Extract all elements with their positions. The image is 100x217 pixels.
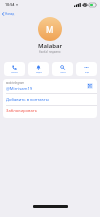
staticText: Назад [5, 12, 15, 16]
button[interactable]: поиск [52, 62, 73, 76]
button[interactable]: Добавить в контакты [3, 94, 97, 105]
staticText: Добавить в контакты [6, 97, 49, 103]
staticText: 10:54 [5, 2, 15, 7]
button[interactable]: Назад [0, 9, 100, 18]
button[interactable]: звонок [4, 62, 25, 76]
other: QR code [87, 83, 93, 89]
staticText: видео [36, 71, 42, 74]
staticText: @Mirrisam19 [6, 86, 33, 92]
staticText: ещё [85, 71, 89, 74]
button[interactable]: мой telegram [3, 79, 97, 93]
staticText: поиск [60, 71, 66, 74]
button[interactable]: ещё [76, 62, 97, 76]
staticText: Заблокировать [6, 108, 37, 114]
staticText: мой telegram [6, 81, 25, 85]
button[interactable]: видео [28, 62, 49, 76]
staticText: Malabar [38, 42, 63, 50]
button[interactable]: Заблокировать [3, 106, 97, 118]
staticText: M [46, 24, 54, 35]
staticText: звонок [11, 71, 18, 74]
staticText: был(а) недавно [39, 50, 61, 54]
